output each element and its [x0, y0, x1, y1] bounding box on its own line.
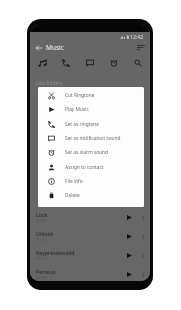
staticText: Set as alarm sound: [65, 149, 108, 156]
staticText: Keypressinvalid: [36, 249, 75, 256]
button[interactable]: Search: [126, 56, 150, 70]
button[interactable]: Play: [123, 230, 136, 243]
staticText: Lock: [36, 211, 48, 218]
staticText: 12:42: [130, 33, 144, 40]
button[interactable]: Calls: [54, 56, 78, 70]
button[interactable]: Set as ringtone: [38, 117, 144, 131]
button[interactable]: Play: [123, 268, 136, 281]
staticText: Set as ringtone: [65, 121, 99, 128]
staticText: Low Battery: [36, 80, 63, 87]
staticText: 00:01: [36, 237, 47, 243]
staticText: File info: [65, 178, 83, 185]
staticText: Unlock: [36, 230, 54, 237]
button[interactable]: Sort: [134, 41, 147, 54]
button[interactable]: Alarms: [102, 56, 126, 70]
button[interactable]: Messages: [78, 56, 102, 70]
staticText: 00:12: [36, 256, 47, 262]
button[interactable]: Lock: [30, 208, 150, 227]
button[interactable]: Set as notification sound: [38, 131, 144, 145]
staticText: Perseus: [36, 268, 56, 275]
button[interactable]: Unlock: [30, 227, 150, 246]
button[interactable]: Play: [123, 249, 136, 262]
staticText: Set as notification sound: [65, 135, 121, 142]
staticText: Play Music: [65, 106, 89, 113]
button[interactable]: Perseus: [30, 265, 150, 281]
staticText: 00:13: [36, 275, 47, 281]
button[interactable]: Play Music: [38, 102, 144, 116]
button[interactable]: More options: [136, 211, 149, 224]
staticText: Delete: [65, 192, 80, 199]
button[interactable]: More options: [136, 249, 149, 262]
staticText: 00:01: [36, 218, 47, 224]
button[interactable]: File info: [38, 174, 144, 188]
button[interactable]: Music: [30, 56, 54, 70]
button[interactable]: More options: [136, 268, 149, 281]
button[interactable]: Play: [123, 211, 136, 224]
button[interactable]: More options: [136, 230, 149, 243]
staticText: Cut Ringtone: [65, 92, 95, 99]
button[interactable]: Assign to contact: [38, 160, 144, 174]
staticText: Music: [46, 43, 64, 52]
button[interactable]: Cut Ringtone: [38, 88, 144, 102]
button[interactable]: Keypressinvalid: [30, 246, 150, 265]
staticText: Assign to contact: [65, 164, 104, 171]
button[interactable]: Set as alarm sound: [38, 145, 144, 159]
button[interactable]: Delete: [38, 188, 144, 202]
button[interactable]: Back: [33, 42, 44, 53]
